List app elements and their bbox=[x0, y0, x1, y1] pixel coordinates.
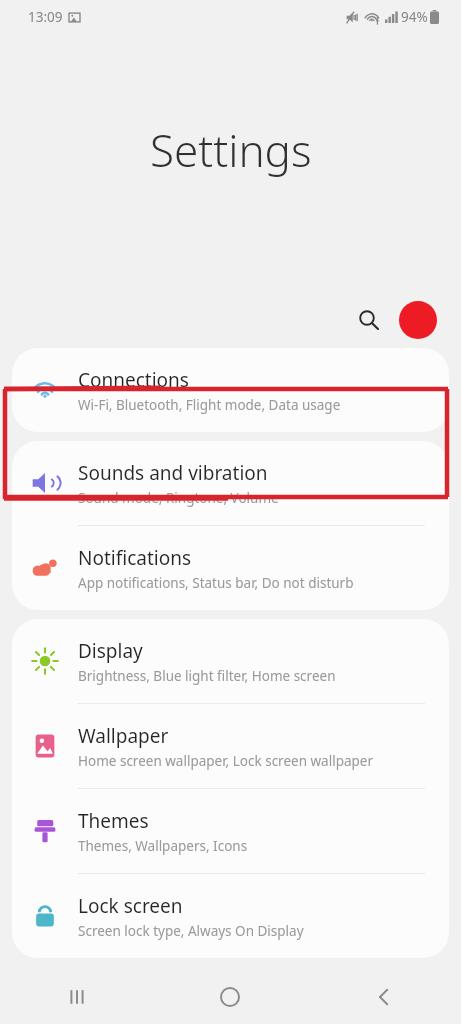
staticText: Brightness, Blue light filter, Home scre… bbox=[78, 667, 336, 685]
staticText: Wallpaper bbox=[78, 723, 169, 749]
staticText: Themes, Wallpapers, Icons bbox=[78, 837, 248, 855]
staticText: Screen lock type, Always On Display bbox=[78, 922, 304, 940]
button[interactable]: Themes bbox=[12, 789, 449, 873]
staticText: Home screen wallpaper, Lock screen wallp… bbox=[78, 752, 374, 770]
staticText: Themes bbox=[78, 808, 149, 834]
button[interactable]: Sounds and vibration bbox=[12, 441, 449, 525]
button[interactable]: Connections bbox=[12, 348, 449, 432]
staticText: Notifications bbox=[78, 545, 192, 571]
staticText: Connections bbox=[78, 367, 189, 393]
staticText: Sounds and vibration bbox=[78, 460, 268, 486]
staticText: Display bbox=[78, 638, 143, 664]
button[interactable]: Notifications bbox=[12, 526, 449, 610]
button[interactable]: Back bbox=[307, 970, 461, 1024]
staticText: Lock screen bbox=[78, 893, 183, 919]
staticText: 13:09 bbox=[28, 8, 63, 26]
staticText: Settings bbox=[150, 120, 312, 180]
staticText: App notifications, Status bar, Do not di… bbox=[78, 574, 354, 592]
button[interactable]: Display bbox=[12, 619, 449, 703]
button[interactable]: Profile bbox=[397, 299, 439, 341]
button[interactable]: Wallpaper bbox=[12, 704, 449, 788]
staticText: Wi-Fi, Bluetooth, Flight mode, Data usag… bbox=[78, 396, 341, 414]
button[interactable]: Lock screen bbox=[12, 874, 449, 958]
staticText: Sound mode, Ringtone, Volume bbox=[78, 489, 279, 507]
button[interactable]: Recents bbox=[0, 970, 153, 1024]
staticText: 94% bbox=[401, 8, 428, 26]
button[interactable]: Search bbox=[349, 300, 389, 340]
button[interactable]: Home bbox=[153, 970, 307, 1024]
